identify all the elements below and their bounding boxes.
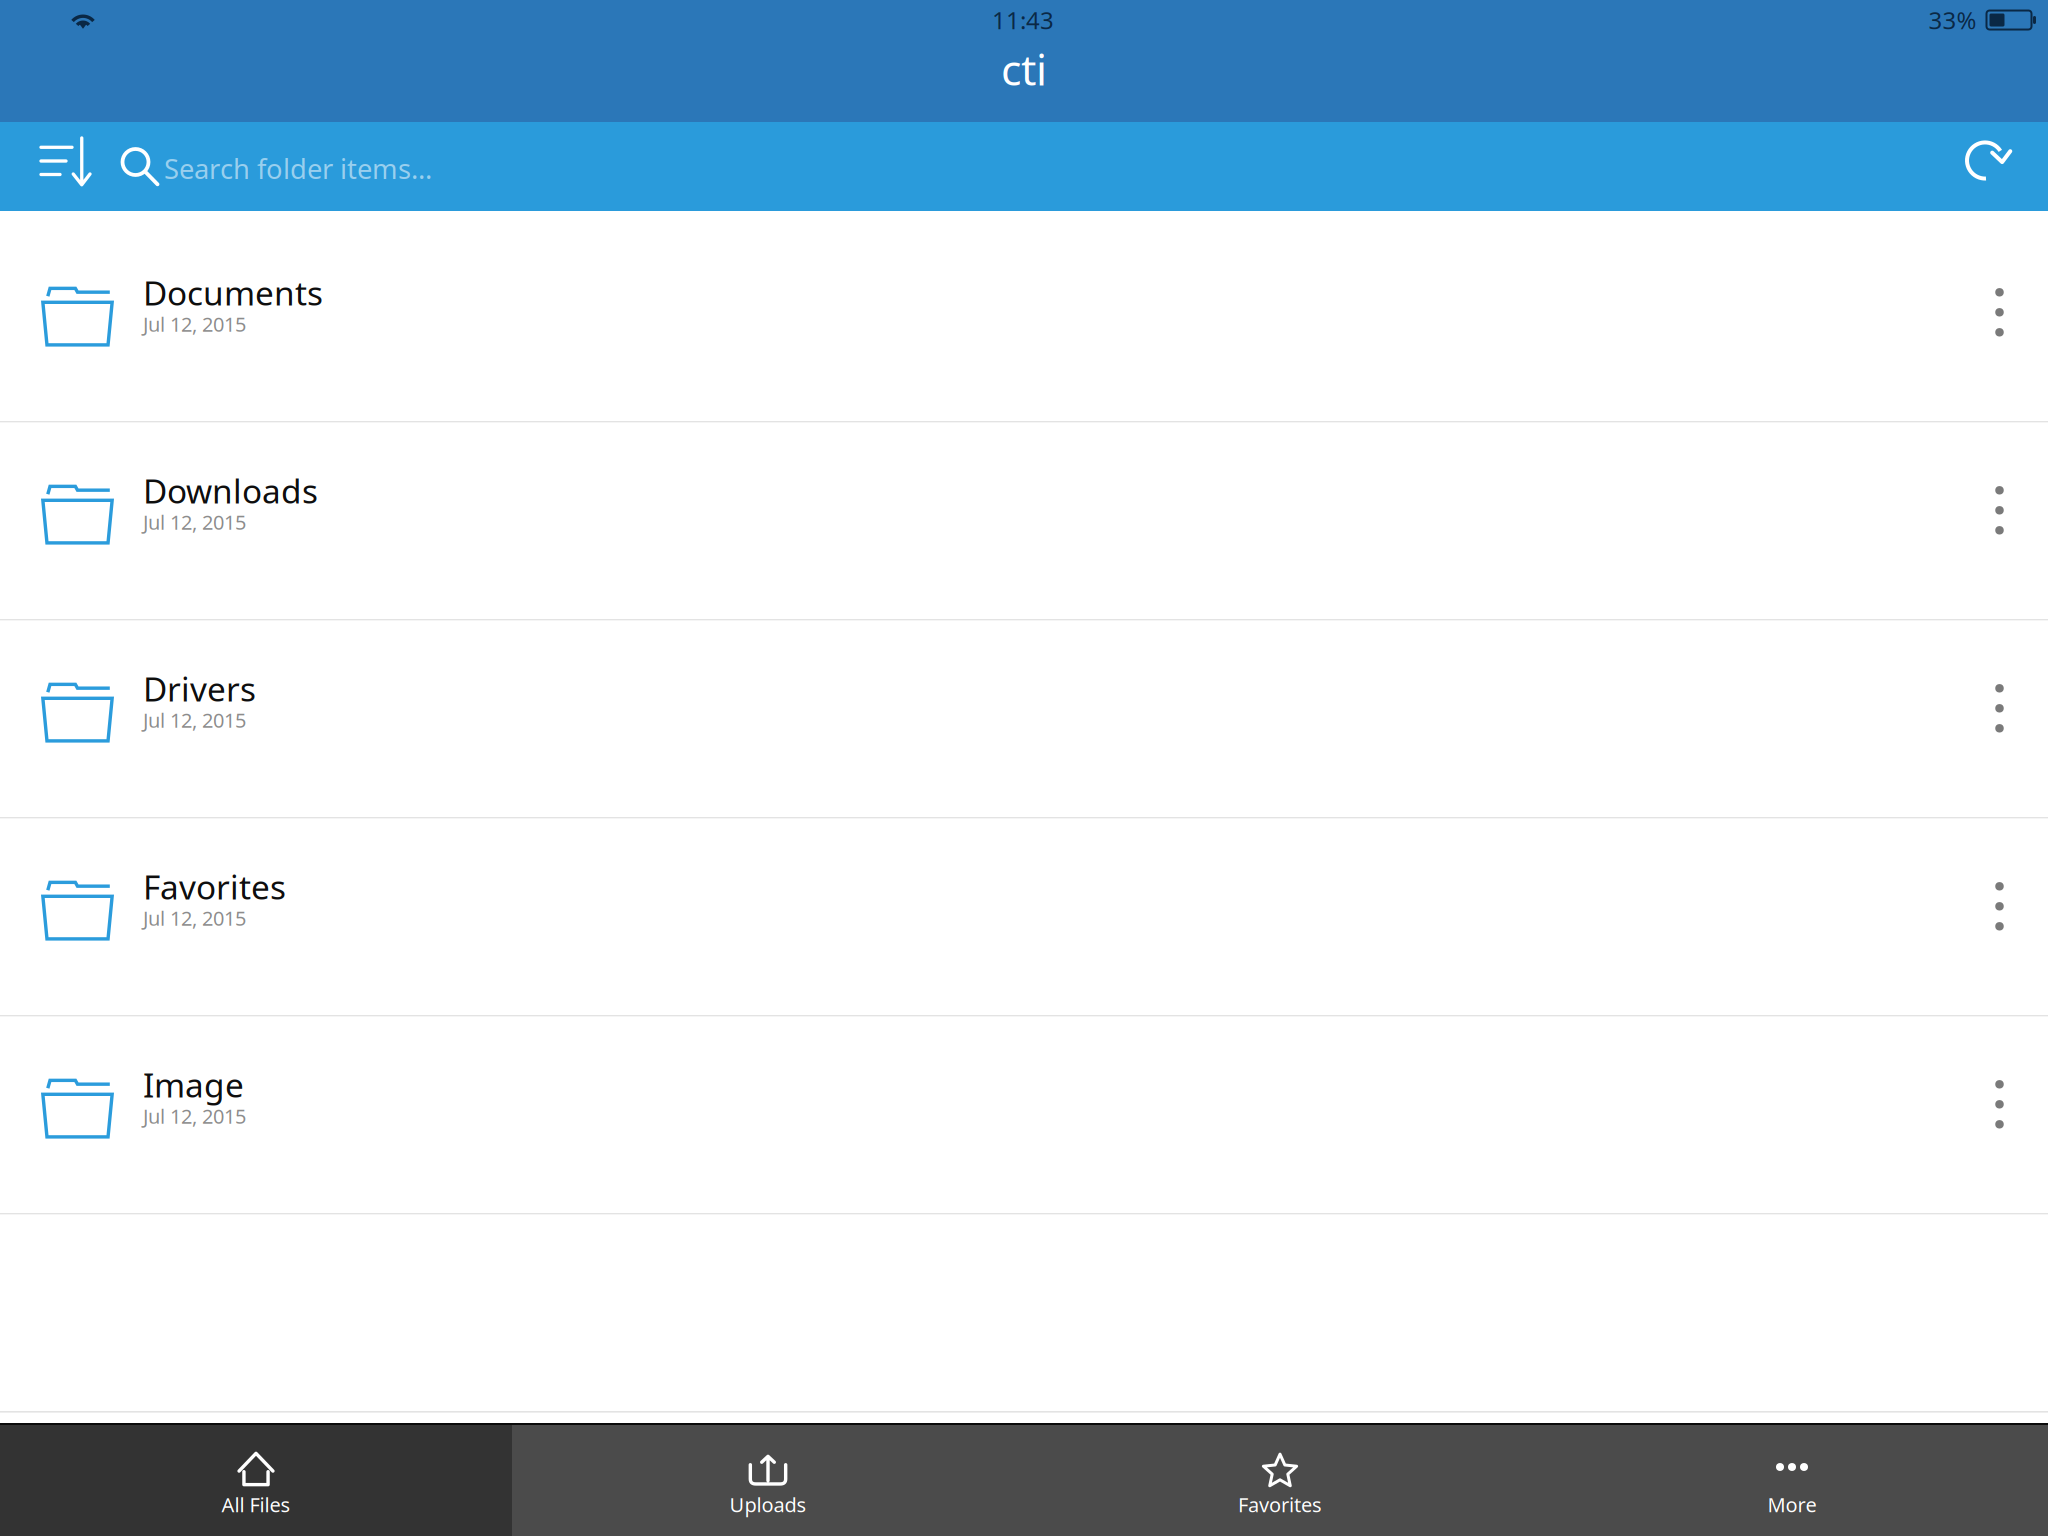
button[interactable]: Downloads (0, 423, 2048, 619)
button[interactable]: Favorites (1024, 1423, 1536, 1536)
staticText: Image (143, 1062, 244, 1107)
button[interactable]: Search folder items... (121, 122, 1928, 211)
staticText: Jul 12, 2015 (143, 706, 246, 734)
staticText: Jul 12, 2015 (143, 508, 246, 536)
staticText: Search folder items... (164, 150, 432, 187)
button[interactable]: Documents (0, 225, 2048, 421)
staticText: Uploads (729, 1491, 806, 1518)
staticText: 33% (1928, 4, 1976, 36)
button[interactable]: Sort (0, 122, 121, 211)
staticText: Jul 12, 2015 (143, 310, 246, 338)
button[interactable]: Favorites (0, 819, 2048, 1015)
staticText: Documents (143, 270, 323, 315)
staticText: All Files (221, 1491, 290, 1518)
staticText: Favorites (1238, 1491, 1322, 1518)
staticText: Jul 12, 2015 (143, 1102, 246, 1130)
staticText: Jul 12, 2015 (143, 904, 246, 932)
button[interactable]: Refresh (1928, 122, 2048, 211)
staticText: More (1767, 1491, 1816, 1518)
button[interactable]: All Files (0, 1423, 512, 1536)
staticText: cti (1001, 40, 1047, 98)
button[interactable]: Image (0, 1017, 2048, 1213)
staticText: Favorites (143, 864, 286, 909)
button[interactable]: Drivers (0, 621, 2048, 817)
staticText: Drivers (143, 666, 256, 711)
button[interactable]: Uploads (512, 1423, 1024, 1536)
staticText: 11:43 (992, 4, 1054, 36)
button[interactable]: More (1536, 1423, 2048, 1536)
staticText: Downloads (143, 468, 318, 513)
